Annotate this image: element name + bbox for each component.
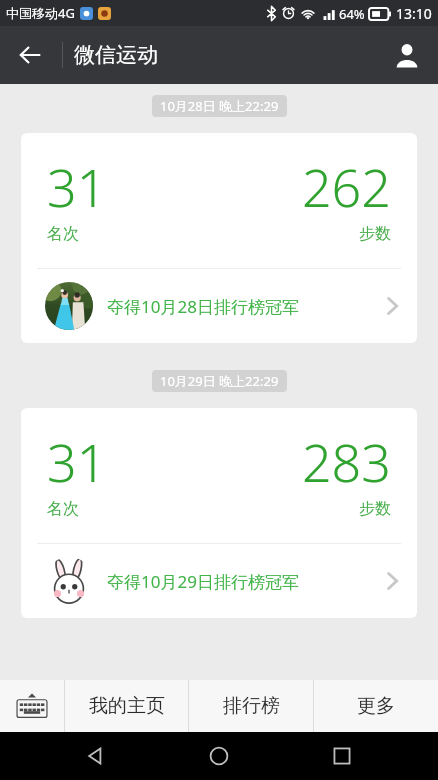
staticText: 步数 <box>359 224 391 244</box>
staticText: 262 <box>301 151 391 222</box>
staticText: 更多 <box>357 694 395 718</box>
button[interactable]: Home <box>192 732 246 780</box>
button[interactable]: Profile <box>384 32 430 78</box>
button[interactable]: Recents <box>315 732 369 780</box>
button[interactable]: Back <box>69 732 123 780</box>
button[interactable]: 排行榜 <box>189 680 313 732</box>
staticText: 步数 <box>359 499 391 519</box>
staticText: 夺得10月29日排行榜冠军 <box>107 570 386 593</box>
button[interactable]: 更多 <box>314 680 438 732</box>
staticText: 我的主页 <box>89 694 165 718</box>
staticText: 283 <box>301 426 391 497</box>
button[interactable]: Keyboard <box>0 680 64 732</box>
button[interactable]: 夺得10月29日排行榜冠军 <box>21 544 417 618</box>
staticText: 13:10 <box>396 4 432 23</box>
button[interactable]: 31 <box>21 133 417 343</box>
staticText: 31 <box>47 426 107 497</box>
button[interactable]: 我的主页 <box>65 680 188 732</box>
staticText: 10月29日 晚上22:29 <box>160 372 279 390</box>
button[interactable]: 31 <box>21 408 417 618</box>
staticText: 64% <box>339 5 365 23</box>
staticText: 排行榜 <box>223 694 280 718</box>
staticText: 微信运动 <box>74 42 158 68</box>
button[interactable]: 夺得10月28日排行榜冠军 <box>21 269 417 343</box>
staticText: 31 <box>47 151 107 222</box>
staticText: 中国移动4G <box>6 4 75 22</box>
button[interactable]: Back <box>8 33 52 77</box>
staticText: 10月28日 晚上22:29 <box>160 97 279 115</box>
staticText: 名次 <box>47 499 79 519</box>
staticText: 夺得10月28日排行榜冠军 <box>107 295 386 318</box>
staticText: 名次 <box>47 224 79 244</box>
